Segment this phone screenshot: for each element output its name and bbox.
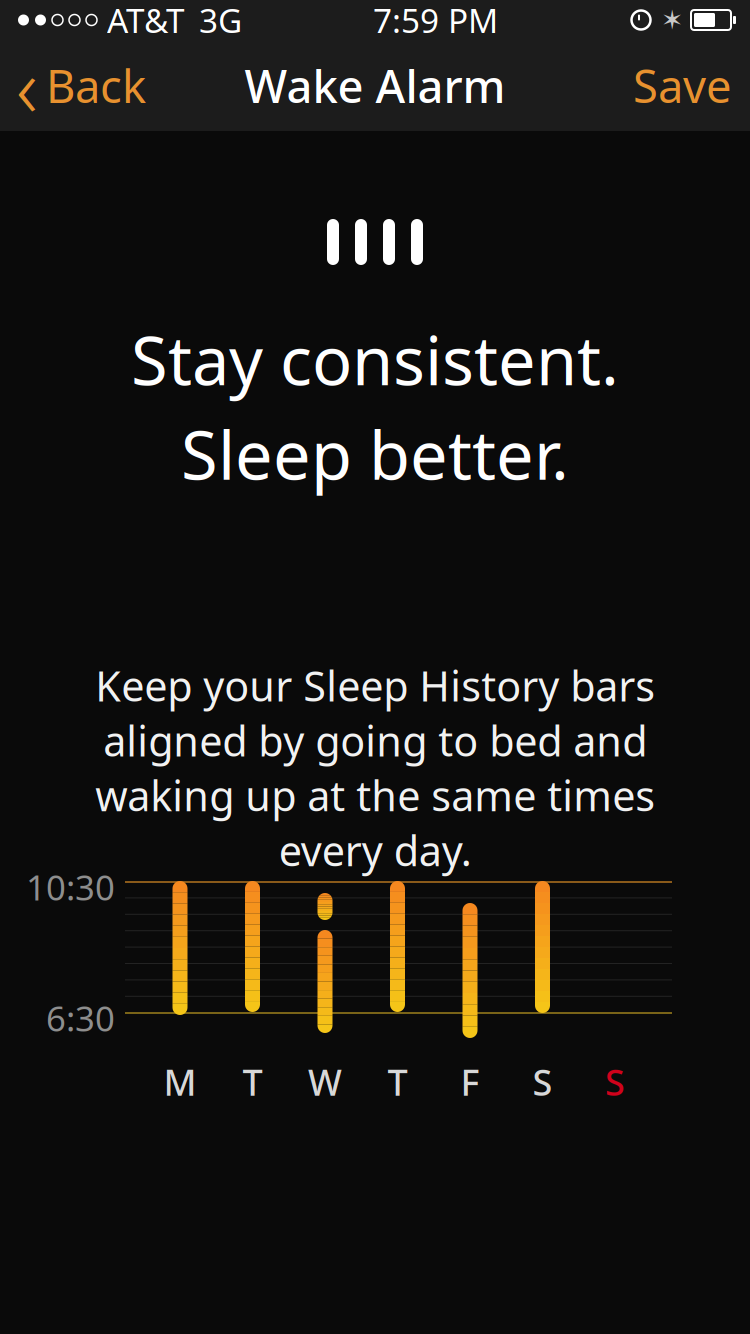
button[interactable]: ‹ — [0, 45, 160, 125]
staticText: 6:30 — [46, 995, 115, 1041]
staticText: Back — [46, 55, 146, 116]
staticText: Sleep better. — [181, 409, 569, 498]
staticText: ✶ — [661, 5, 683, 35]
staticText: Wake Alarm — [244, 55, 505, 116]
staticText: F — [460, 1058, 479, 1106]
staticText: 7:59 PM — [373, 0, 498, 42]
staticText: W — [308, 1058, 342, 1106]
staticText: Stay consistent. — [131, 315, 619, 403]
staticText: T — [242, 1058, 262, 1106]
staticText: T — [387, 1058, 407, 1106]
staticText: S — [605, 1058, 625, 1106]
staticText: Keep your Sleep History bars aligned by … — [95, 658, 655, 878]
staticText: ‹ — [16, 31, 38, 140]
staticText: 10:30 — [26, 864, 115, 910]
staticText: Save — [633, 55, 732, 116]
staticText: M — [163, 1058, 196, 1106]
staticText: 3G — [199, 0, 242, 42]
staticText: AT&T — [107, 0, 185, 42]
button[interactable]: Save — [615, 45, 750, 125]
staticText: S — [532, 1058, 552, 1106]
